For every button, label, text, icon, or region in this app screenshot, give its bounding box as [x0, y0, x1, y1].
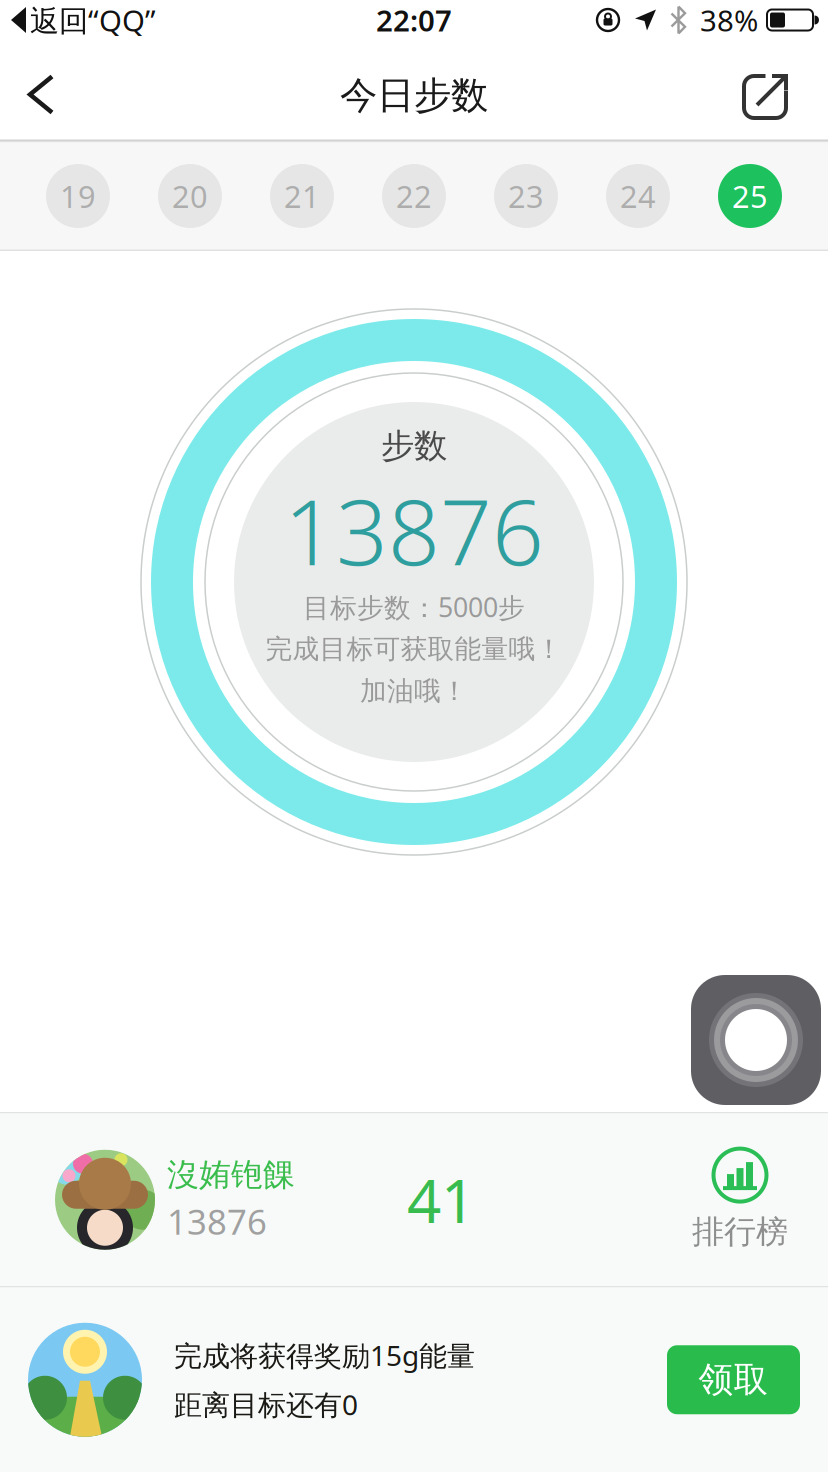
button[interactable]: 22 [382, 164, 446, 228]
staticText: 13876 [284, 470, 544, 590]
staticText: 20 [172, 176, 208, 216]
staticText: 13876 [167, 1198, 267, 1244]
staticText: 21 [284, 176, 320, 216]
staticText: 沒姷铇餜 [167, 1155, 295, 1194]
button[interactable]: 25 [718, 164, 782, 228]
staticText: 完成将获得奖励15g能量 [174, 1337, 475, 1374]
staticText: 距离目标还有0 [174, 1386, 358, 1423]
staticText: 领取 [698, 1358, 768, 1401]
staticText: 23 [508, 176, 544, 216]
button[interactable]: 领取 [667, 1345, 828, 1414]
button[interactable]: Share [744, 55, 828, 134]
staticText: 加油哦！ [360, 675, 468, 707]
button[interactable]: Back [0, 56, 53, 132]
staticText: 38% [700, 0, 758, 39]
button[interactable]: 20 [158, 164, 222, 228]
button[interactable]: 23 [494, 164, 558, 228]
staticText: 今日步数 [340, 73, 488, 118]
staticText: 24 [620, 176, 656, 216]
staticText: 25 [732, 176, 768, 216]
button[interactable]: 24 [606, 164, 670, 228]
button[interactable]: 排行榜 [692, 1148, 828, 1251]
staticText: 步数 [381, 425, 447, 466]
staticText: 返回“QQ” [30, 0, 156, 39]
button[interactable]: AssistiveTouch [691, 975, 821, 1105]
staticText: 19 [60, 176, 96, 216]
staticText: 22:07 [376, 0, 452, 39]
button[interactable]: 21 [270, 164, 334, 228]
staticText: 22 [396, 176, 432, 216]
staticText: 目标步数：5000步 [303, 589, 525, 625]
staticText: 41 [407, 1160, 475, 1240]
staticText: 完成目标可获取能量哦！ [265, 633, 562, 665]
button[interactable]: 19 [46, 164, 110, 228]
staticText: 排行榜 [692, 1212, 788, 1251]
